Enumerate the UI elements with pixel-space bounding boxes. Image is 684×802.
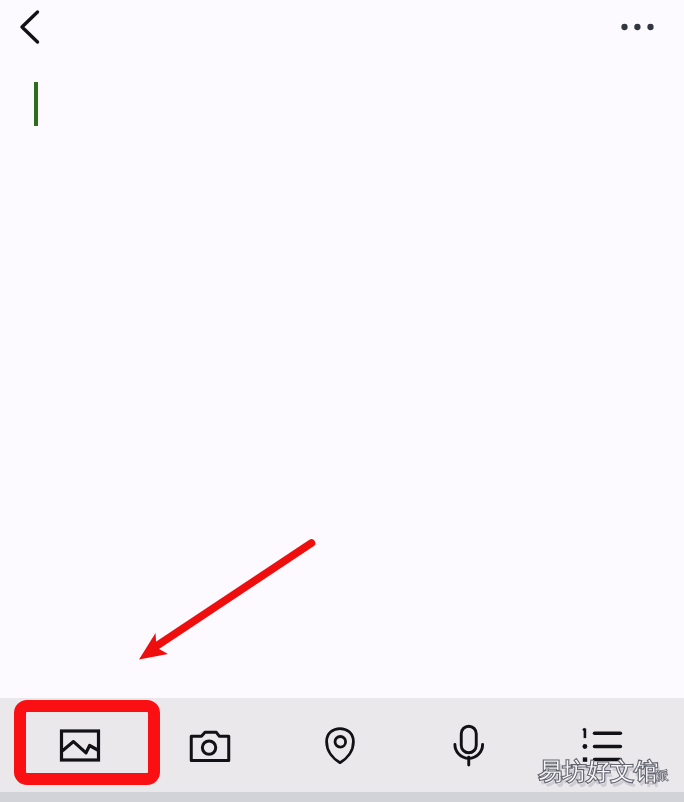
button[interactable]: Location — [275, 698, 404, 802]
button[interactable]: Voice input — [404, 698, 535, 802]
button[interactable]: Back — [2, 6, 44, 48]
button[interactable]: Photo album — [0, 698, 145, 802]
staticText: 派 — [656, 768, 668, 783]
staticText: 易坊好文馆 — [540, 761, 660, 791]
button[interactable]: More options — [604, 6, 666, 48]
button[interactable]: Camera — [145, 698, 275, 802]
button[interactable]: List format — [535, 698, 684, 802]
staticText: 易坊好文馆 — [538, 757, 658, 787]
staticText: 派 — [656, 768, 668, 783]
staticText: 易坊好文馆 — [538, 757, 658, 787]
